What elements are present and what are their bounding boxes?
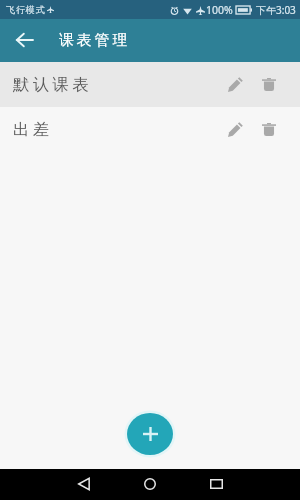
button[interactable]: Recents (199, 468, 233, 499)
button[interactable]: 默认课表 (0, 62, 300, 107)
staticText: 飞行模式 (6, 4, 46, 15)
staticText: 下午3:03 (256, 3, 296, 17)
staticText: 100% (206, 3, 233, 17)
button[interactable]: 出差 (0, 107, 300, 152)
button[interactable]: Delete (252, 113, 286, 147)
button[interactable]: Back (8, 25, 40, 57)
staticText: 默认课表 (13, 74, 93, 94)
staticText: 课表管理 (59, 31, 131, 50)
button[interactable]: Delete (252, 68, 286, 102)
button[interactable]: Back (67, 468, 101, 499)
button[interactable]: Edit (218, 68, 252, 102)
staticText: 出差 (13, 119, 53, 139)
button[interactable]: Add (127, 413, 173, 455)
button[interactable]: Edit (218, 113, 252, 147)
button[interactable]: Home (133, 468, 167, 499)
